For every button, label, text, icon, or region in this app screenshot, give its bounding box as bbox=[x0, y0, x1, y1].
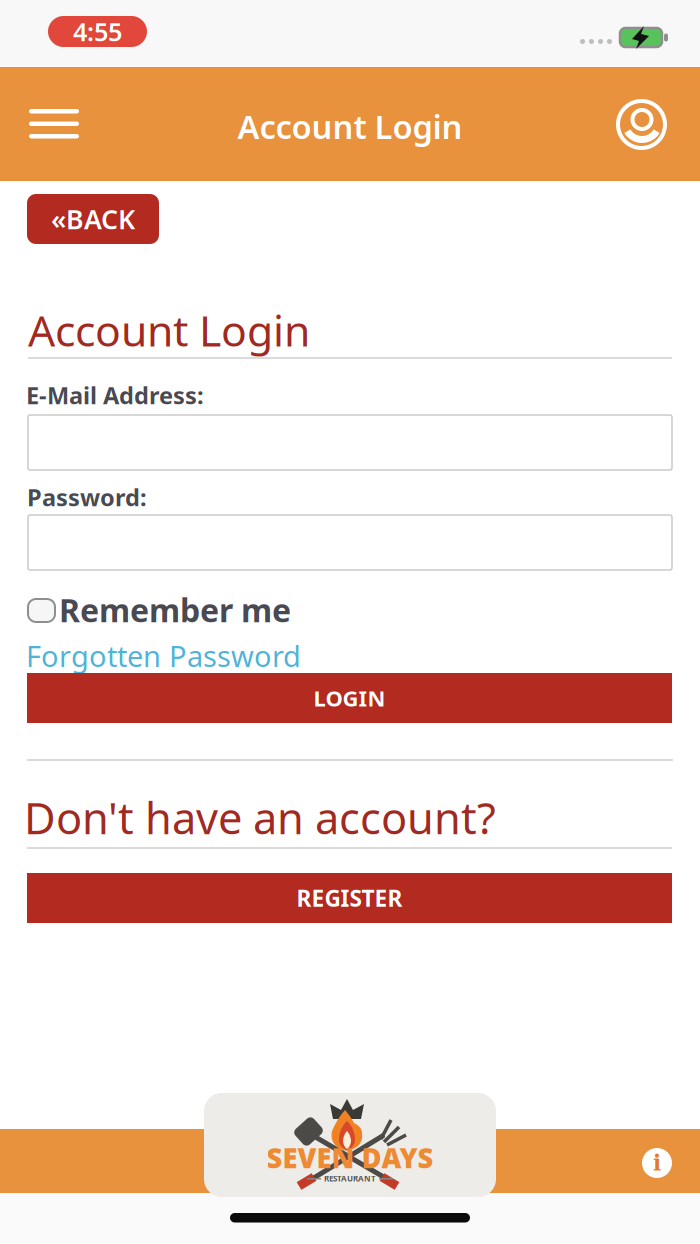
button[interactable]: Forgotten Password bbox=[26, 636, 301, 675]
staticText: Remember me bbox=[59, 588, 291, 632]
button[interactable]: Remember me bbox=[28, 588, 291, 632]
button[interactable]: Menu bbox=[21, 101, 87, 146]
staticText: «BACK bbox=[51, 201, 135, 237]
staticText: LOGIN bbox=[313, 683, 385, 713]
staticText: Account Login bbox=[28, 301, 310, 359]
staticText: Password: bbox=[27, 481, 147, 513]
button[interactable]: «BACK bbox=[27, 194, 159, 244]
button[interactable]: Account bbox=[610, 93, 673, 156]
staticText: i bbox=[653, 1150, 661, 1176]
staticText: Account Login bbox=[237, 104, 462, 148]
staticText: 4:55 bbox=[73, 14, 122, 49]
staticText: SEVEN DAYS bbox=[266, 1139, 433, 1176]
staticText: Don't have an account? bbox=[24, 788, 496, 847]
staticText: Forgotten Password bbox=[26, 636, 301, 675]
staticText: E-Mail Address: bbox=[26, 379, 204, 411]
button[interactable]: LOGIN bbox=[27, 673, 672, 723]
button[interactable]: REGISTER bbox=[27, 873, 672, 923]
staticText: REGISTER bbox=[296, 883, 402, 913]
button[interactable]: Information bbox=[636, 1142, 678, 1184]
staticText: RESTAURANT bbox=[324, 1173, 376, 1184]
